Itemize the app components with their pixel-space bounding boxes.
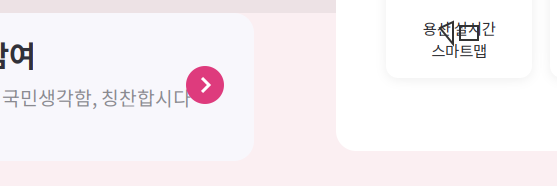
button[interactable]: 용산 실시간 스마트맵 bbox=[386, 0, 532, 78]
button[interactable]: 구민참여 bbox=[0, 13, 254, 161]
staticText: 구민참여 bbox=[0, 33, 36, 75]
staticText: 용산 실시간 스마트맵 bbox=[422, 17, 495, 61]
staticText: 국민생각함, 칭찬합시다 bbox=[2, 83, 191, 111]
